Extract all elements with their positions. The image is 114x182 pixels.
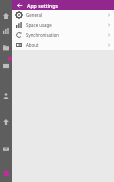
button[interactable]: Back [15,1,23,9]
button[interactable]: General [12,10,114,20]
staticText: Synchronisation [26,32,107,38]
staticText: App settings [27,2,59,9]
button[interactable]: Synchronisation [12,30,114,40]
button[interactable]: About [12,40,114,50]
button[interactable]: Uploads [0,116,12,127]
button[interactable]: Archive [0,143,12,154]
button[interactable]: Files [0,42,12,53]
staticText: Space usage [26,22,107,28]
button[interactable]: Home [0,10,12,21]
button[interactable]: Space usage [12,20,114,30]
staticText: About [26,42,107,48]
button[interactable]: Settings [0,168,12,179]
button[interactable]: Contacts [0,90,12,101]
staticText: General [26,12,107,18]
button[interactable]: Gallery [0,60,12,71]
button[interactable]: Statistics [0,25,12,36]
